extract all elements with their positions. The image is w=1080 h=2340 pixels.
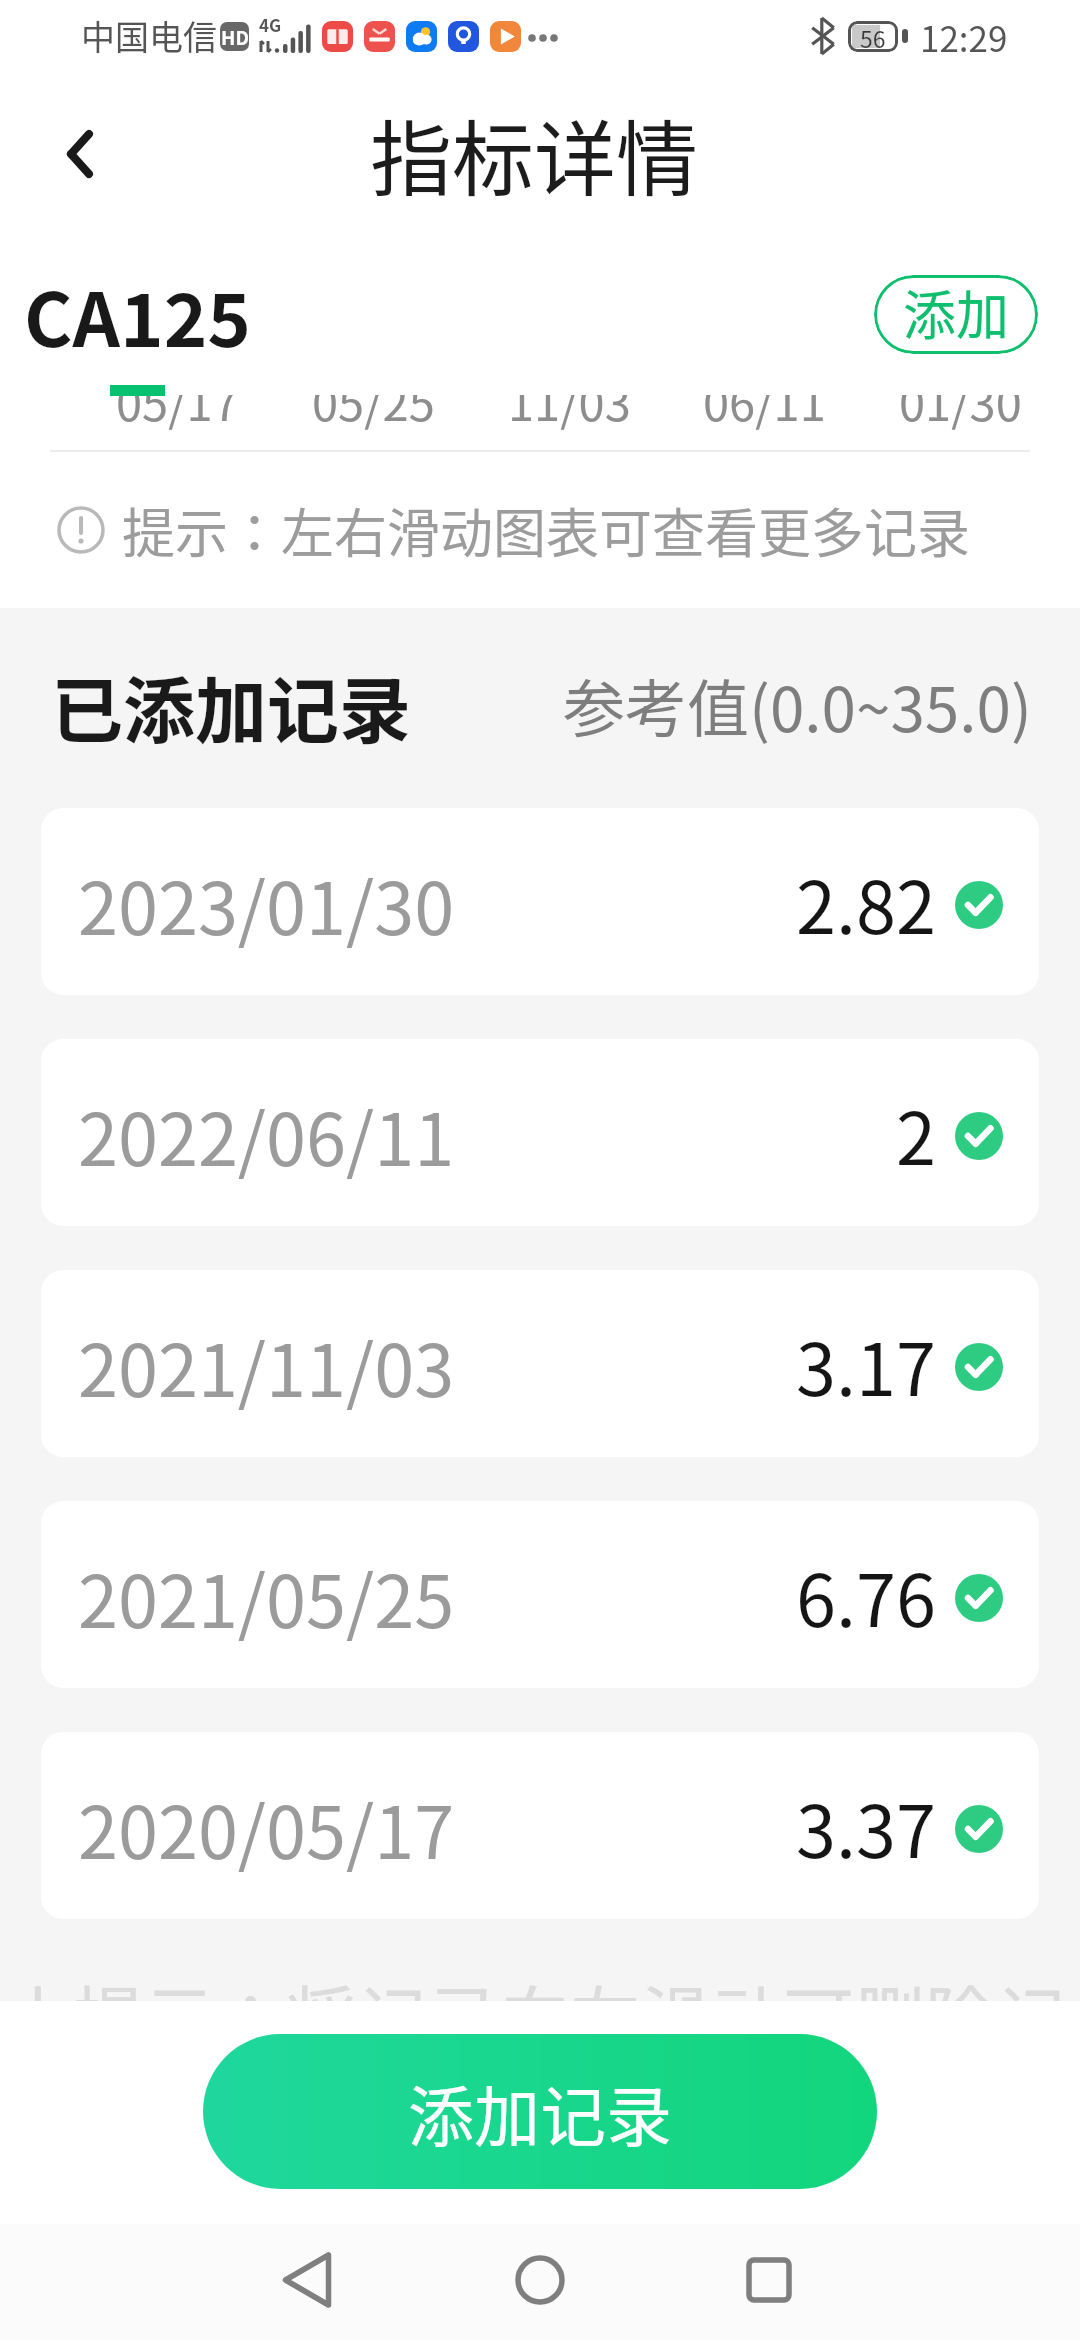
button[interactable]: Back <box>25 99 135 209</box>
staticText: 4G <box>259 12 282 37</box>
staticText: 3.17 <box>796 1312 936 1416</box>
staticText: 06/11 <box>703 366 826 434</box>
staticText: 指标详情 <box>370 94 699 213</box>
staticText: CA125 <box>24 261 251 368</box>
staticText: 小提示：将记录向左滑动可删除记录 <box>2 1963 1080 2001</box>
staticText: 提示：左右滑动图表可查看更多记录 <box>122 492 970 569</box>
staticText: 6.76 <box>796 1543 936 1647</box>
button[interactable]: 2023/01/30 <box>41 808 1039 995</box>
staticText: 中国电信 <box>81 11 217 60</box>
staticText: 添加记录 <box>408 2064 672 2160</box>
staticText: 2 <box>896 1081 936 1185</box>
staticText: 2020/05/17 <box>78 1775 455 1879</box>
button[interactable]: 2020/05/17 <box>41 1732 1039 1919</box>
staticText: 11/03 <box>508 366 631 434</box>
staticText: 12:29 <box>920 11 1008 62</box>
button[interactable]: 添加记录 <box>203 2034 877 2189</box>
staticText: 05/25 <box>312 366 435 434</box>
staticText: 05/17 <box>116 366 239 434</box>
staticText: 01/30 <box>899 366 1022 434</box>
staticText: 3.37 <box>796 1774 936 1878</box>
button[interactable]: 2021/05/25 <box>41 1501 1039 1688</box>
staticText: 2023/01/30 <box>78 851 455 955</box>
staticText: 2022/06/11 <box>78 1082 455 1186</box>
staticText: HD <box>221 23 249 51</box>
staticText: 2.82 <box>796 850 936 954</box>
button[interactable]: Back <box>252 2225 362 2335</box>
staticText: 参考值(0.0~35.0) <box>563 660 1032 750</box>
button[interactable]: Recents <box>714 2225 824 2335</box>
staticText: 56 <box>860 21 886 52</box>
button[interactable]: Home <box>485 2225 595 2335</box>
button[interactable]: 2022/06/11 <box>41 1039 1039 1226</box>
staticText: 已添加记录 <box>51 653 412 757</box>
staticText: 2021/11/03 <box>78 1313 455 1417</box>
button[interactable]: 2021/11/03 <box>41 1270 1039 1457</box>
button[interactable]: 添加 <box>874 275 1038 354</box>
staticText: 添加 <box>903 275 1009 351</box>
staticText: 2021/05/25 <box>78 1544 455 1648</box>
